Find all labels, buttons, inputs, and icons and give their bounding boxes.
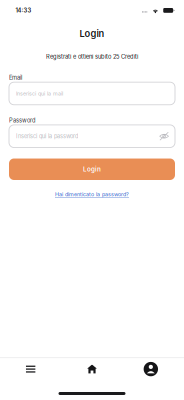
button[interactable]: Home: [61, 362, 123, 377]
staticText: Login: [79, 28, 104, 39]
staticText: Inserisci qui la password: [16, 133, 78, 140]
button[interactable]: Hai dimenticato la password?: [55, 191, 129, 197]
button[interactable]: Menu: [0, 362, 61, 377]
button[interactable]: Login: [9, 158, 175, 180]
staticText: Login: [83, 165, 101, 173]
staticText: Registrati e ottieni subito 25 Crediti: [46, 53, 138, 60]
staticText: Hai dimenticato la password?: [55, 191, 129, 197]
staticText: Password: [9, 117, 36, 124]
staticText: Inserisci qui la mail: [16, 90, 63, 97]
staticText: Email: [9, 74, 22, 81]
staticText: 14:33: [15, 7, 31, 14]
button[interactable]: Profile: [123, 362, 184, 377]
